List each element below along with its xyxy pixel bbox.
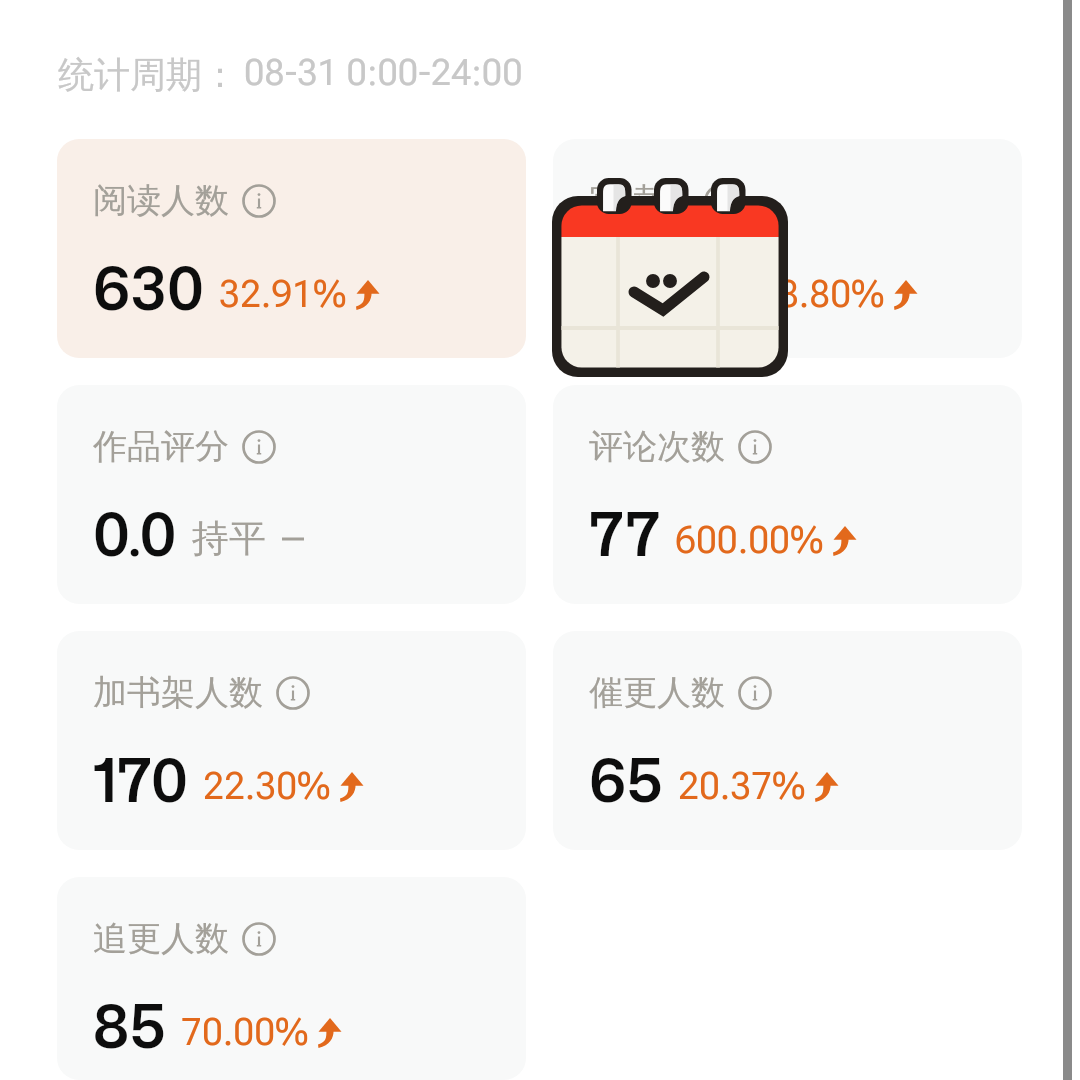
button[interactable]: 作品评分 xyxy=(57,385,526,604)
staticText: 1.75% xyxy=(589,245,742,330)
staticText: 77 xyxy=(589,491,660,576)
staticText: 追更人数 xyxy=(93,917,229,960)
staticText: 评论次数 xyxy=(589,425,725,468)
staticText: 0.0 xyxy=(93,491,177,576)
button[interactable]: About 加书架人数 xyxy=(276,676,310,710)
staticText: 统计周期： xyxy=(58,52,238,97)
staticText: 32.91% xyxy=(219,273,347,316)
staticText: 催更人数 xyxy=(589,671,725,714)
button[interactable]: About 作品评分 xyxy=(242,430,276,464)
staticText: 22.30% xyxy=(203,765,331,808)
staticText: 58.80% xyxy=(757,273,885,316)
button[interactable]: 追更人数 xyxy=(57,877,526,1080)
staticText: 20.37% xyxy=(678,765,806,808)
button[interactable]: About 完读率 xyxy=(704,184,738,218)
button[interactable]: About 阅读人数 xyxy=(242,184,276,218)
staticText: 170 xyxy=(93,737,188,822)
button[interactable]: About 催更人数 xyxy=(738,676,772,710)
button[interactable]: 加书架人数 xyxy=(57,631,526,850)
button[interactable]: 完读率 xyxy=(553,139,1022,358)
staticText: 持平 xyxy=(192,515,266,562)
staticText: 65 xyxy=(589,737,663,822)
button[interactable]: 评论次数 xyxy=(553,385,1022,604)
staticText: 70.00% xyxy=(181,1011,309,1054)
button[interactable]: About 追更人数 xyxy=(242,922,276,956)
staticText: 600.00% xyxy=(675,519,824,562)
staticText: 阅读人数 xyxy=(93,179,229,222)
staticText: 作品评分 xyxy=(93,425,229,468)
staticText: 完读率 xyxy=(589,179,691,222)
button[interactable]: 催更人数 xyxy=(553,631,1022,850)
staticText: 85 xyxy=(93,983,166,1068)
staticText: 08-31 0:00-24:00 xyxy=(244,52,523,94)
button[interactable]: 阅读人数 xyxy=(57,139,526,358)
staticText: 630 xyxy=(93,245,204,330)
staticText: 加书架人数 xyxy=(93,671,263,714)
button[interactable]: About 评论次数 xyxy=(738,430,772,464)
